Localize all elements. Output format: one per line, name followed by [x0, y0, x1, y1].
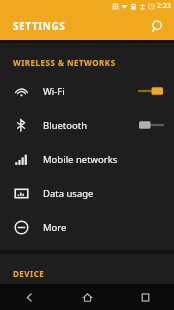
button[interactable]: Home — [58, 284, 116, 310]
staticText: Bluetooth — [43, 119, 138, 132]
staticText: Data usage — [43, 187, 164, 200]
button[interactable]: Back — [0, 284, 58, 310]
staticText: Wi-Fi — [43, 85, 138, 98]
button[interactable]: Mobile networks — [0, 142, 174, 176]
staticText: SETTINGS — [13, 19, 66, 33]
button[interactable]: Wi-Fi — [0, 74, 174, 108]
button[interactable]: Bluetooth — [0, 108, 174, 142]
button[interactable] — [138, 84, 164, 98]
button[interactable]: Data usage — [0, 176, 174, 210]
button[interactable]: More — [0, 210, 174, 244]
staticText: DEVICE — [13, 268, 45, 278]
staticText: More — [43, 221, 164, 234]
button[interactable]: Search — [146, 15, 168, 37]
staticText: 2:23 — [157, 1, 171, 11]
staticText: Mobile networks — [43, 153, 164, 166]
button[interactable] — [138, 118, 164, 132]
button[interactable]: Recent apps — [116, 284, 174, 310]
staticText: WIRELESS & NETWORKS — [13, 57, 116, 68]
